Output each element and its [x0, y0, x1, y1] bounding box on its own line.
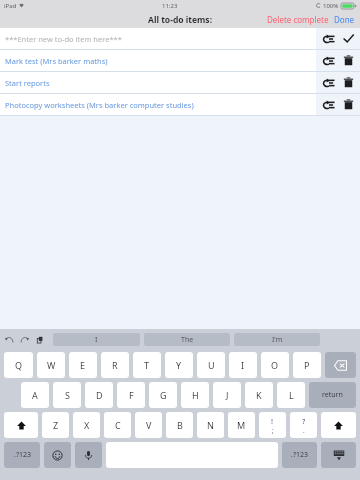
button[interactable]: E [69, 352, 97, 378]
button[interactable]: V [135, 412, 162, 438]
staticText: Done [334, 14, 355, 25]
staticText: T [144, 359, 150, 371]
button[interactable]: T [133, 352, 161, 378]
button[interactable]: Reorder item [320, 52, 337, 69]
button[interactable]: Delete item [340, 96, 357, 113]
staticText: K [256, 389, 262, 401]
button[interactable]: Shift [321, 412, 356, 438]
button[interactable]: N [197, 412, 224, 438]
button[interactable]: The [144, 333, 230, 346]
staticText: A [32, 389, 38, 401]
staticText: The [181, 335, 194, 345]
button[interactable]: I'm [234, 333, 320, 346]
button[interactable]: R [101, 352, 129, 378]
button[interactable]: Add item [340, 30, 357, 47]
button[interactable]: .?123 [4, 442, 40, 468]
button[interactable]: Paste [32, 332, 47, 347]
staticText: All to-do items: [148, 14, 213, 26]
button[interactable]: U [197, 352, 225, 378]
button[interactable]: Emoji [44, 442, 71, 468]
button[interactable]: Delete item [340, 52, 357, 69]
button[interactable]: S [53, 382, 81, 408]
staticText: E [80, 359, 86, 371]
button[interactable]: Dictate [75, 442, 102, 468]
staticText: R [112, 359, 118, 371]
staticText: M [237, 419, 246, 431]
staticText: ? [302, 416, 306, 426]
staticText: Y [176, 359, 182, 371]
button[interactable]: Mark test (Mrs barker maths) [0, 50, 360, 71]
button[interactable]: Hide keyboard [321, 442, 356, 468]
button[interactable]: X [73, 412, 100, 438]
staticText: F [129, 389, 134, 401]
staticText: W [47, 359, 56, 371]
staticText: 11:23 [162, 2, 178, 10]
staticText: H [192, 389, 199, 401]
staticText: .?123 [14, 450, 31, 460]
staticText: Z [53, 419, 59, 431]
button[interactable]: A [21, 382, 49, 408]
staticText: Delete complete [267, 14, 329, 25]
button[interactable]: Done [332, 12, 357, 27]
button[interactable]: G [149, 382, 177, 408]
staticText: I [241, 359, 245, 371]
button[interactable]: Redo [17, 332, 32, 347]
staticText: ; [272, 426, 274, 435]
button[interactable]: F [117, 382, 145, 408]
button[interactable]: P [293, 352, 321, 378]
button[interactable]: O [261, 352, 289, 378]
button[interactable]: B [166, 412, 193, 438]
button[interactable]: Reorder item [320, 96, 337, 113]
button[interactable]: J [213, 382, 241, 408]
button[interactable]: ? [290, 412, 317, 438]
button[interactable]: Z [42, 412, 69, 438]
staticText: S [65, 389, 70, 401]
button[interactable]: L [277, 382, 305, 408]
button[interactable]: I [53, 333, 140, 346]
staticText: U [208, 359, 215, 371]
staticText: return [322, 390, 343, 400]
button[interactable]: return [309, 382, 356, 408]
button[interactable]: K [245, 382, 273, 408]
button[interactable]: Start reports [0, 72, 360, 93]
button[interactable]: .?123 [282, 442, 317, 468]
button[interactable]: ! [259, 412, 286, 438]
button[interactable]: Photocopy worksheets (Mrs barker compute… [0, 94, 360, 115]
staticText: 100% [323, 2, 339, 10]
button[interactable]: Undo [2, 332, 17, 347]
staticText: N [207, 419, 214, 431]
staticText: Photocopy worksheets (Mrs barker compute… [5, 100, 194, 110]
staticText: G [160, 389, 167, 401]
staticText: . [303, 426, 305, 435]
button[interactable]: Q [4, 352, 33, 378]
button[interactable]: M [228, 412, 255, 438]
button[interactable]: ***Enter new to-do item here*** [0, 28, 360, 49]
button[interactable]: Backspace [325, 352, 356, 378]
staticText: .?123 [291, 450, 308, 460]
staticText: P [304, 359, 310, 371]
staticText: J [226, 389, 229, 401]
button[interactable]: Y [165, 352, 193, 378]
button[interactable]: H [181, 382, 209, 408]
staticText: Mark test (Mrs barker maths) [5, 56, 108, 66]
button[interactable]: I [229, 352, 257, 378]
staticText: L [289, 389, 294, 401]
staticText: ***Enter new to-do item here*** [5, 34, 122, 44]
staticText: V [146, 419, 152, 431]
button[interactable]: W [37, 352, 65, 378]
staticText: D [96, 389, 103, 401]
staticText: Q [15, 359, 23, 371]
button[interactable]: Delete item [340, 74, 357, 91]
button[interactable]: Delete complete [265, 12, 331, 27]
button[interactable]: Reorder item [320, 74, 337, 91]
button[interactable]: Shift [4, 412, 38, 438]
staticText: B [177, 419, 183, 431]
button[interactable]: C [104, 412, 131, 438]
staticText: O [271, 359, 279, 371]
button[interactable]: Reorder item [320, 30, 337, 47]
button[interactable]: D [85, 382, 113, 408]
staticText: iPad [4, 2, 17, 10]
staticText: I [95, 335, 98, 345]
staticText: X [84, 419, 90, 431]
